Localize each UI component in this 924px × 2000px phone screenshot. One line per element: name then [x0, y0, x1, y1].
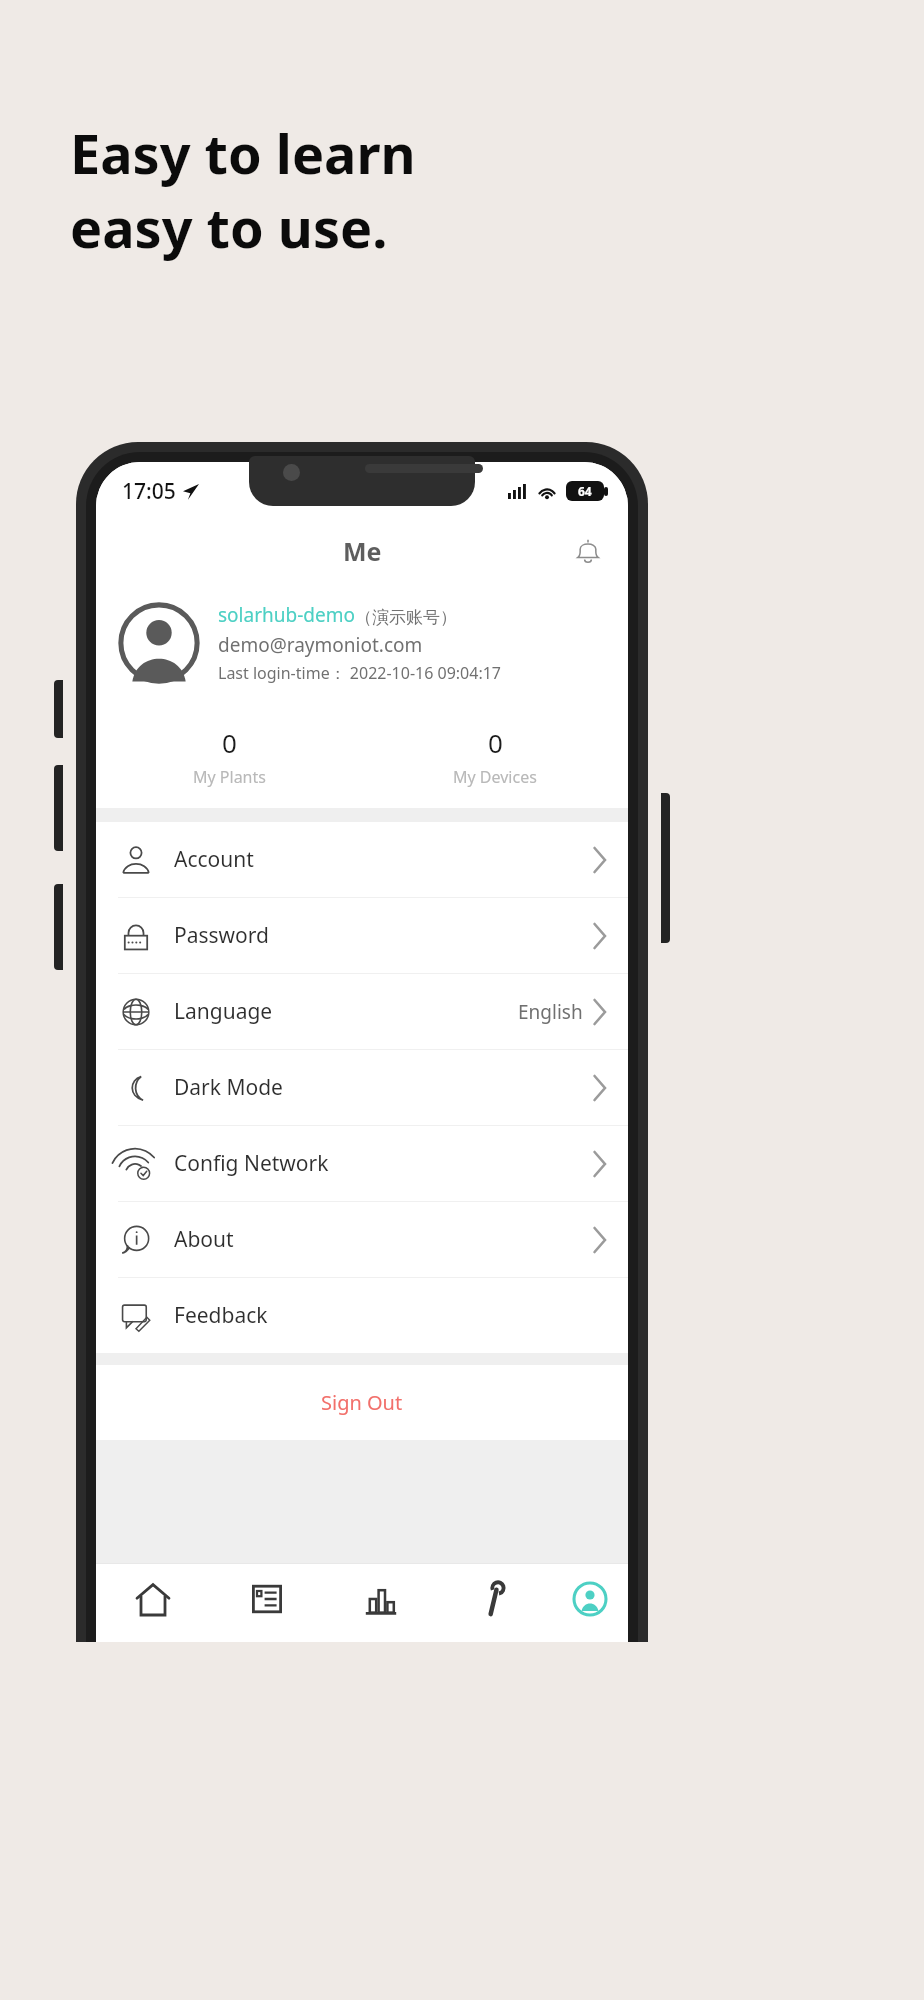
button[interactable]: Stats: [324, 1564, 438, 1642]
staticText: My Plants: [193, 766, 266, 788]
staticText: English: [518, 999, 583, 1025]
staticText: Password: [174, 921, 269, 950]
staticText: Config Network: [174, 1149, 329, 1178]
staticText: 64: [578, 483, 592, 499]
button[interactable]: 0: [362, 704, 628, 808]
button[interactable]: Config Network: [96, 1126, 628, 1201]
staticText: solarhub-demo: [218, 602, 355, 628]
button[interactable]: Me: [552, 1564, 628, 1642]
button[interactable]: Password: [96, 898, 628, 973]
staticText: Feedback: [174, 1301, 268, 1330]
staticText: 0: [222, 725, 237, 760]
staticText: Account: [174, 845, 254, 874]
button[interactable]: Feedback: [96, 1278, 628, 1353]
button[interactable]: Dark Mode: [96, 1050, 628, 1125]
staticText: Language: [174, 997, 273, 1026]
staticText: 17:05: [122, 477, 176, 506]
staticText: Sign Out: [321, 1389, 403, 1416]
button[interactable]: Plants: [210, 1564, 324, 1642]
button[interactable]: Home: [96, 1564, 210, 1642]
button[interactable]: Tools: [438, 1564, 552, 1642]
button[interactable]: Language: [96, 974, 628, 1049]
staticText: Me: [343, 534, 382, 568]
staticText: easy to use.: [70, 190, 388, 264]
staticText: Easy to learn: [70, 116, 416, 190]
staticText: （演示账号）: [355, 607, 457, 628]
button[interactable]: 0: [96, 704, 362, 808]
staticText: 0: [488, 725, 503, 760]
staticText: Last login-time： 2022-10-16 09:04:17: [218, 662, 501, 684]
staticText: My Devices: [453, 766, 537, 788]
staticText: Dark Mode: [174, 1073, 283, 1102]
button[interactable]: About: [96, 1202, 628, 1277]
button[interactable]: Sign Out: [96, 1365, 628, 1440]
button[interactable]: Account: [96, 822, 628, 897]
staticText: demo@raymoniot.com: [218, 632, 423, 658]
button[interactable]: solarhub-demo: [118, 582, 628, 704]
staticText: About: [174, 1225, 234, 1254]
button[interactable]: Notifications: [566, 529, 610, 573]
